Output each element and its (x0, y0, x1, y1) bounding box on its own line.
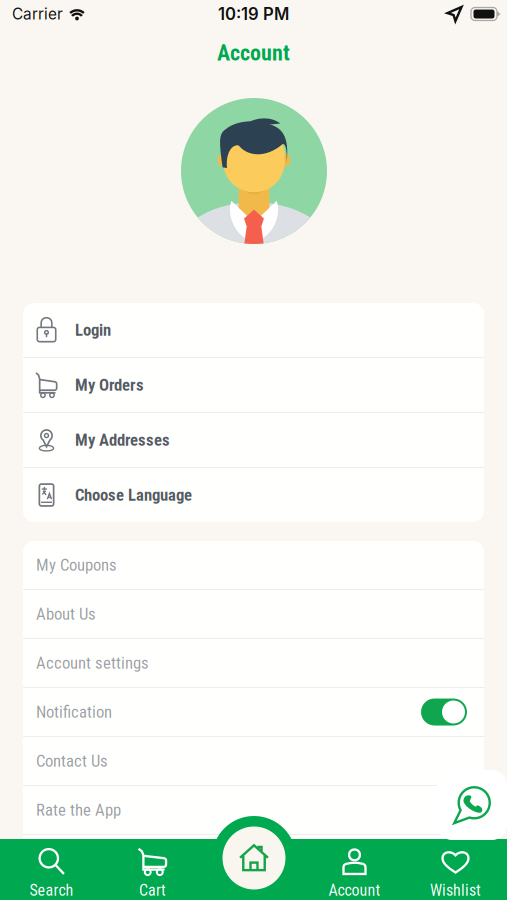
button[interactable]: Search (1, 839, 102, 900)
button[interactable]: WhatsApp chat (437, 770, 507, 840)
staticText: Search (29, 881, 73, 900)
staticText: 10:19 PM (218, 4, 289, 24)
staticText: Account settings (36, 653, 149, 673)
button[interactable]: My Coupons (23, 541, 484, 589)
button[interactable]: Share the App (23, 835, 484, 883)
button[interactable]: Rate the App (23, 786, 484, 834)
staticText: Contact Us (36, 751, 108, 771)
staticText: Share the App (36, 849, 129, 869)
button[interactable]: Login (23, 303, 484, 357)
staticText: Account (328, 881, 380, 900)
button[interactable]: Home (212, 816, 296, 900)
button[interactable]: Contact Us (23, 737, 484, 785)
staticText: Rate the App (36, 800, 121, 820)
button[interactable]: Notification (23, 688, 484, 736)
button[interactable]: My Addresses (23, 413, 484, 467)
button[interactable]: About Us (23, 590, 484, 638)
staticText: My Orders (75, 375, 144, 395)
button[interactable]: Account (304, 839, 405, 900)
staticText: Login (75, 320, 111, 340)
staticText: Cart (139, 881, 166, 900)
staticText: Choose Language (75, 485, 192, 505)
button[interactable]: Account settings (23, 639, 484, 687)
button[interactable]: Cart (102, 839, 203, 900)
staticText: My Addresses (75, 430, 170, 450)
staticText: Carrier (12, 5, 63, 23)
staticText: Account (217, 40, 290, 66)
button[interactable]: My Orders (23, 358, 484, 412)
button[interactable]: Choose Language (23, 468, 484, 522)
button[interactable]: Wishlist (405, 839, 506, 900)
staticText: Wishlist (430, 881, 481, 900)
staticText: My Coupons (36, 555, 117, 575)
staticText: Notification (36, 702, 112, 722)
staticText: About Us (36, 604, 96, 624)
